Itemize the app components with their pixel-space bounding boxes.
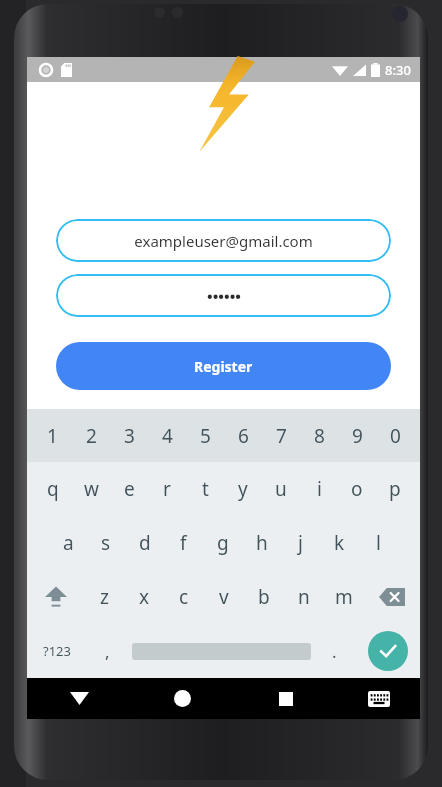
button[interactable]: 0 <box>376 409 414 462</box>
staticText: x <box>139 584 150 610</box>
staticText: 4 <box>162 423 173 449</box>
staticText: 2 <box>86 423 97 449</box>
button[interactable]: 9 <box>338 409 376 462</box>
button[interactable]: 6 <box>224 409 262 462</box>
staticText: q <box>47 476 59 502</box>
button[interactable]: f <box>164 516 203 570</box>
staticText: a <box>63 530 74 556</box>
staticText: w <box>84 476 99 502</box>
staticText: 7 <box>276 423 287 449</box>
staticText: k <box>334 530 345 556</box>
button[interactable]: 8 <box>300 409 338 462</box>
button[interactable]: h <box>242 516 281 570</box>
button[interactable]: Hide keyboard <box>27 678 131 719</box>
button[interactable]: l <box>359 516 398 570</box>
button[interactable]: r <box>148 462 186 516</box>
staticText: •••••• <box>207 286 241 306</box>
staticText: , <box>105 640 110 663</box>
staticText: y <box>238 476 248 502</box>
button[interactable]: a <box>49 516 87 570</box>
button[interactable]: ?123 <box>27 624 87 678</box>
button[interactable]: t <box>186 462 224 516</box>
button[interactable]: 5 <box>186 409 224 462</box>
button[interactable]: e <box>110 462 148 516</box>
button[interactable]: d <box>125 516 164 570</box>
staticText: t <box>202 476 209 502</box>
button[interactable]: 4 <box>148 409 186 462</box>
button[interactable]: x <box>124 570 164 624</box>
button[interactable]: p <box>376 462 414 516</box>
staticText: f <box>180 530 187 556</box>
button[interactable]: 1 <box>33 409 72 462</box>
staticText: m <box>335 584 353 610</box>
button[interactable]: 3 <box>110 409 148 462</box>
button[interactable]: c <box>164 570 204 624</box>
button[interactable]: Shift <box>27 570 84 624</box>
button[interactable]: o <box>338 462 376 516</box>
button[interactable]: n <box>284 570 324 624</box>
staticText: 1 <box>47 423 58 449</box>
staticText: c <box>179 584 189 610</box>
staticText: ?123 <box>43 642 71 660</box>
staticText: . <box>332 640 337 663</box>
button[interactable]: y <box>224 462 262 516</box>
staticText: g <box>217 530 229 556</box>
button[interactable]: i <box>300 462 338 516</box>
button[interactable]: exampleuser@gmail.com <box>56 219 391 262</box>
staticText: o <box>351 476 363 502</box>
staticText: r <box>163 476 171 502</box>
button[interactable]: u <box>262 462 300 516</box>
staticText: v <box>219 584 229 610</box>
button[interactable]: , <box>87 624 128 678</box>
button[interactable]: k <box>320 516 359 570</box>
staticText: 8:30 <box>385 61 411 79</box>
staticText: 6 <box>238 423 249 449</box>
staticText: p <box>389 476 401 502</box>
staticText: n <box>298 584 310 610</box>
button[interactable]: 7 <box>262 409 300 462</box>
staticText: 3 <box>124 423 135 449</box>
staticText: 0 <box>390 423 401 449</box>
staticText: exampleuser@gmail.com <box>134 231 313 251</box>
button[interactable]: b <box>244 570 284 624</box>
staticText: j <box>298 530 303 556</box>
button[interactable]: z <box>84 570 124 624</box>
button[interactable]: Register <box>56 342 391 390</box>
staticText: 5 <box>200 423 211 449</box>
staticText: 8 <box>314 423 325 449</box>
staticText: i <box>317 476 322 502</box>
button[interactable]: Enter <box>355 624 420 678</box>
staticText: 9 <box>352 423 363 449</box>
button[interactable]: Backspace <box>364 570 420 624</box>
staticText: e <box>124 476 135 502</box>
staticText: b <box>258 584 270 610</box>
button[interactable]: Home <box>131 678 234 719</box>
button[interactable]: •••••• <box>56 274 391 317</box>
button[interactable]: Space <box>128 624 314 678</box>
staticText: z <box>100 584 109 610</box>
button[interactable]: Recents <box>234 678 337 719</box>
button[interactable]: m <box>324 570 364 624</box>
staticText: Register <box>194 357 253 376</box>
staticText: h <box>256 530 268 556</box>
button[interactable]: 2 <box>72 409 110 462</box>
button[interactable]: w <box>72 462 110 516</box>
button[interactable]: v <box>204 570 244 624</box>
staticText: d <box>139 530 151 556</box>
button[interactable]: g <box>203 516 242 570</box>
button[interactable]: q <box>33 462 72 516</box>
button[interactable]: s <box>87 516 125 570</box>
staticText: s <box>101 530 111 556</box>
button[interactable]: j <box>281 516 320 570</box>
button[interactable]: Switch keyboard <box>337 678 420 719</box>
staticText: l <box>376 530 381 556</box>
staticText: u <box>275 476 287 502</box>
button[interactable]: . <box>314 624 355 678</box>
